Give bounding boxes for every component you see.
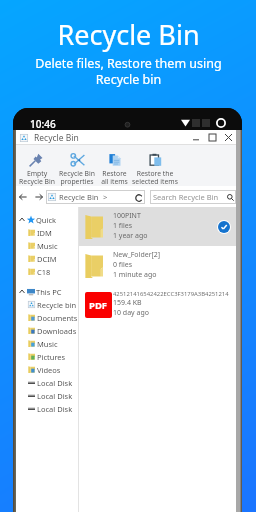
- button[interactable]: Quick: [16, 213, 78, 226]
- button[interactable]: Minimize: [188, 130, 204, 145]
- button[interactable]: Local Disk: [16, 389, 78, 402]
- button[interactable]: Videos: [16, 363, 78, 376]
- button[interactable]: Search Recycle Bin: [153, 190, 234, 204]
- button[interactable]: Music: [16, 337, 78, 350]
- button[interactable]: Empty Recycle Bin: [16, 145, 57, 186]
- staticText: 1 files: [113, 221, 133, 231]
- button[interactable]: Music: [16, 239, 78, 252]
- staticText: Recycle Bin: [34, 132, 79, 144]
- staticText: Delete files, Restore them using Recycle…: [35, 55, 222, 88]
- staticText: Recycle Bin: [59, 192, 99, 202]
- staticText: Restore all items: [101, 169, 128, 186]
- staticText: Music: [37, 339, 58, 349]
- button[interactable]: Back: [17, 190, 28, 204]
- button[interactable]: Pictures: [16, 350, 78, 363]
- staticText: 0 files: [113, 260, 133, 270]
- button[interactable]: Restore all items: [97, 145, 132, 186]
- button[interactable]: Downloads: [16, 324, 78, 337]
- button[interactable]: PDF: [79, 285, 236, 324]
- button[interactable]: Maximize: [204, 130, 220, 145]
- staticText: Music: [37, 241, 58, 251]
- staticText: 1 minute ago: [113, 270, 157, 280]
- staticText: Recycle Bin properties: [59, 169, 95, 186]
- staticText: Recycle Bin: [57, 16, 200, 53]
- staticText: DCIM: [37, 254, 57, 264]
- staticText: 1 year ago: [113, 231, 148, 241]
- button[interactable]: New_Folder[2]: [79, 246, 236, 285]
- staticText: Pictures: [37, 352, 66, 362]
- staticText: 100PINT: [113, 211, 141, 221]
- staticText: 10 day ago: [113, 308, 149, 318]
- staticText: Documents: [37, 313, 78, 323]
- button[interactable]: Recycle Bin properties: [57, 145, 97, 186]
- staticText: Search Recycle Bin: [153, 192, 219, 202]
- staticText: This PC: [36, 287, 62, 297]
- staticText: Local Disk: [37, 404, 73, 414]
- staticText: 159.4 KB: [113, 298, 142, 308]
- staticText: Downloads: [37, 326, 77, 336]
- staticText: Local Disk: [37, 378, 73, 388]
- button[interactable]: Recycle Bin: [48, 190, 144, 204]
- staticText: Local Disk: [37, 391, 73, 401]
- staticText: PDF: [89, 299, 108, 312]
- button[interactable]: Local Disk: [16, 376, 78, 389]
- staticText: Videos: [37, 365, 61, 375]
- button[interactable]: Close: [220, 130, 236, 145]
- button[interactable]: This PC: [16, 285, 78, 298]
- button[interactable]: C18: [16, 265, 78, 278]
- staticText: 425121416542422ECC3F3179A3B4251214: [113, 290, 229, 298]
- staticText: Quick: [36, 215, 57, 225]
- button[interactable]: Refresh: [133, 192, 144, 203]
- staticText: New_Folder[2]: [113, 250, 161, 260]
- button[interactable]: Recycle bin: [16, 298, 78, 311]
- staticText: Empty Recycle Bin: [19, 169, 55, 186]
- button[interactable]: IDM: [16, 226, 78, 239]
- button[interactable]: 100PINT: [79, 207, 236, 246]
- staticText: C18: [37, 267, 51, 277]
- button[interactable]: Forward: [33, 190, 44, 204]
- button[interactable]: Restore the selected items: [132, 145, 178, 186]
- staticText: Recycle bin: [37, 300, 77, 310]
- staticText: >: [103, 192, 108, 202]
- button[interactable]: DCIM: [16, 252, 78, 265]
- staticText: Restore the selected items: [132, 169, 178, 186]
- staticText: IDM: [37, 228, 52, 238]
- button[interactable]: Local Disk: [16, 402, 78, 415]
- staticText: 10:46: [30, 117, 56, 131]
- button[interactable]: Documents: [16, 311, 78, 324]
